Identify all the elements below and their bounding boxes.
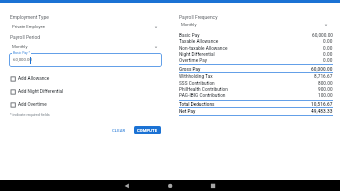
staticText: 8,716.67: [314, 74, 333, 80]
staticText: PhilHealth Contribution: [179, 87, 318, 93]
staticText: Private Employee: [12, 24, 45, 29]
staticText: Night Differential: [179, 52, 323, 58]
staticText: Monthly: [181, 22, 197, 27]
button[interactable]: Back: [118, 180, 136, 191]
button[interactable]: Monthly: [179, 20, 328, 29]
staticText: 100.00: [318, 93, 333, 99]
staticText: * indicate required fields: [10, 113, 50, 117]
staticText: 0.00: [323, 52, 333, 58]
staticText: 900.00: [318, 87, 333, 93]
staticText: Non-taxable Allowance: [179, 46, 323, 52]
staticText: 0.00: [323, 39, 333, 45]
staticText: Add Night Differential: [18, 89, 64, 95]
staticText: 800.00: [318, 81, 333, 87]
button[interactable]: CLEAR: [109, 126, 129, 134]
staticText: Payroll Frequency: [179, 14, 218, 20]
button[interactable]: Add Night Differential: [9, 88, 64, 96]
staticText: Add Allowance: [18, 76, 50, 82]
staticText: CLEAR: [112, 128, 126, 133]
staticText: 0.00: [323, 58, 333, 64]
staticText: COMPUTE: [137, 128, 158, 133]
staticText: Overtime Pay: [179, 58, 323, 64]
staticText: Basic Pay *: [13, 51, 30, 55]
staticText: SSS Contribution: [179, 81, 318, 87]
button[interactable]: Monthly: [10, 42, 158, 51]
staticText: 60,000.00: [13, 57, 32, 62]
button[interactable]: COMPUTE: [134, 126, 161, 134]
staticText: Net Pay: [179, 109, 311, 115]
button[interactable]: Recent apps: [204, 180, 222, 191]
button[interactable]: Add Allowance: [9, 75, 50, 83]
staticText: PAG-IBIG Contribution: [179, 93, 318, 99]
button[interactable]: Add Overtime: [9, 101, 47, 109]
button[interactable]: [9, 53, 162, 67]
staticText: Basic Pay: [179, 33, 312, 39]
staticText: Total Deductions: [179, 102, 311, 108]
button[interactable]: Home: [161, 180, 179, 191]
staticText: Gross Pay: [179, 67, 311, 73]
staticText: 0.00: [323, 46, 333, 52]
staticText: Employment Type: [10, 14, 49, 20]
staticText: Withholding Tax: [179, 74, 314, 80]
staticText: Payroll Period: [10, 34, 41, 40]
staticText: Monthly: [12, 44, 28, 49]
staticText: 10,516.67: [311, 102, 333, 108]
staticText: 60,000.00: [312, 33, 333, 39]
staticText: Add Overtime: [18, 102, 47, 108]
staticText: Taxable Allowance: [179, 39, 323, 45]
staticText: 60,000.00: [311, 67, 333, 73]
button[interactable]: Private Employee: [10, 22, 158, 31]
staticText: 49,483.33: [311, 109, 333, 115]
